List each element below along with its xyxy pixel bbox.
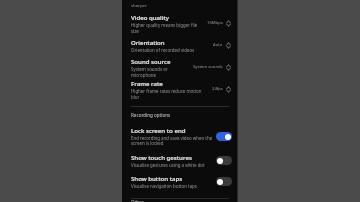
button[interactable]: Video quality <box>122 12 238 34</box>
button[interactable]: Orientation <box>122 34 238 56</box>
staticText: Lock screen to end <box>131 126 186 134</box>
button[interactable]: Off <box>216 177 232 186</box>
button[interactable]: Sound source <box>122 56 238 78</box>
staticText: Orientation <box>131 38 165 46</box>
staticText: Show button taps <box>131 174 183 182</box>
button[interactable]: Show touch gestures <box>122 150 238 171</box>
staticText: Frame rate <box>131 79 163 87</box>
staticText: Higher frame rates reduce motion blur <box>131 88 210 100</box>
button[interactable]: Show button taps <box>122 171 238 192</box>
staticText: 16Mbps <box>207 20 223 26</box>
other: Change value <box>225 64 232 71</box>
staticText: Orientation of recorded videos <box>131 47 195 53</box>
other: Change value <box>225 42 232 49</box>
staticText: Sound source <box>131 57 171 65</box>
staticText: System sounds or microphone <box>131 66 191 78</box>
staticText: Other <box>131 199 144 202</box>
staticText: Visualise gestures using a white dot <box>131 162 205 168</box>
button[interactable]: Frame rate <box>122 78 238 100</box>
staticText: Auto <box>213 42 223 48</box>
staticText: System sounds <box>193 64 223 70</box>
staticText: Video quality <box>131 13 169 21</box>
staticText: End recording and save video when the sc… <box>131 135 213 147</box>
staticText: Higher quality means bigger file size <box>131 22 205 34</box>
button[interactable]: Off <box>216 156 232 165</box>
other: Change value <box>225 86 232 93</box>
staticText: Recording options <box>131 112 171 118</box>
staticText: Show touch gestures <box>131 153 192 161</box>
button[interactable]: On <box>216 132 232 141</box>
staticText: Visualise navigation button taps <box>131 183 197 189</box>
staticText: sharper <box>131 2 147 8</box>
button[interactable]: Lock screen to end <box>122 122 238 150</box>
staticText: 24fps <box>212 86 223 92</box>
other: Change value <box>225 20 232 27</box>
